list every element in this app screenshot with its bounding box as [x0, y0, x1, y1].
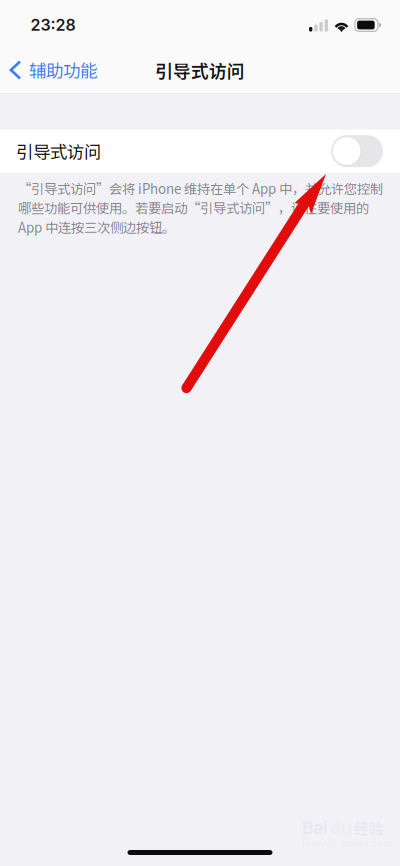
- button[interactable]: 引导式访问: [0, 130, 400, 173]
- staticText: 23:28: [30, 15, 75, 35]
- staticText: 经验: [354, 817, 384, 839]
- staticText: Bai: [302, 817, 328, 838]
- button[interactable]: 辅助功能: [0, 47, 109, 93]
- staticText: 引导式访问: [155, 57, 245, 83]
- staticText: 辅助功能: [29, 57, 97, 83]
- staticText: 引导式访问: [16, 139, 101, 164]
- staticText: “引导式访问”会将 iPhone 维持在单个 App 中，并允许您控制哪些功能可…: [18, 179, 383, 236]
